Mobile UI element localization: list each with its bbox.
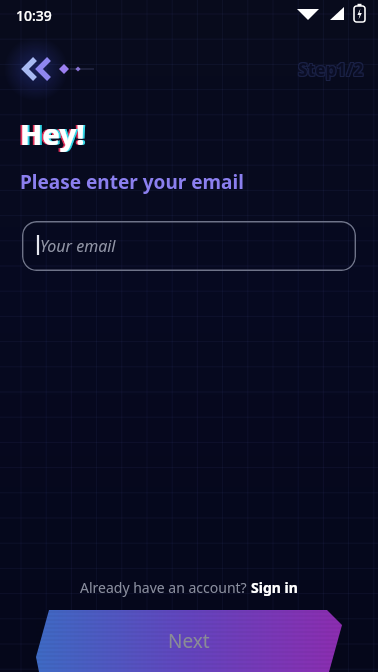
staticText: Step1/2 bbox=[297, 57, 363, 80]
staticText: Step1/2 bbox=[297, 58, 363, 81]
button[interactable]: Next bbox=[36, 610, 342, 672]
staticText: Hey! bbox=[20, 114, 85, 153]
staticText: Already have an account? bbox=[80, 578, 251, 597]
staticText: 10:39 bbox=[16, 6, 52, 25]
staticText: Step1/2 bbox=[299, 57, 365, 80]
staticText: Step1/2 bbox=[298, 58, 364, 81]
button[interactable]: Back bbox=[18, 54, 82, 84]
button[interactable]: Sign in bbox=[251, 576, 298, 599]
staticText: Next bbox=[168, 628, 210, 654]
staticText: Sign in bbox=[251, 578, 298, 597]
staticText: Your email bbox=[40, 235, 116, 257]
staticText: Step1/2 bbox=[298, 59, 364, 82]
staticText: Hey! bbox=[22, 114, 87, 153]
staticText: Step1/2 bbox=[297, 59, 363, 82]
staticText: Hey! bbox=[18, 114, 83, 153]
staticText: Step1/2 bbox=[299, 58, 365, 81]
staticText: Please enter your email bbox=[20, 169, 244, 195]
staticText: Step1/2 bbox=[298, 57, 364, 80]
button[interactable]: Your email bbox=[22, 221, 356, 271]
staticText: Step1/2 bbox=[299, 59, 365, 82]
